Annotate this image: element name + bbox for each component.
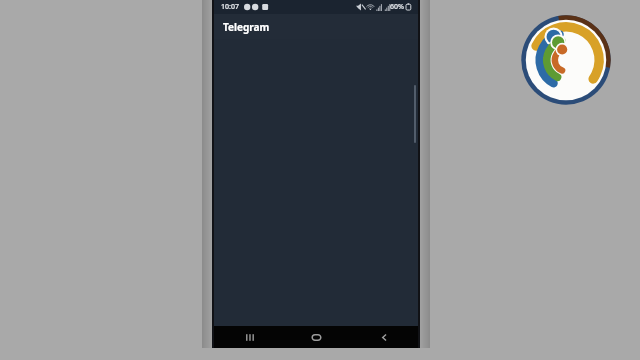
button[interactable]: Telegram (214, 14, 418, 39)
staticText: 10:07 (221, 2, 239, 12)
staticText: 60% (390, 2, 404, 12)
button[interactable]: Home (282, 326, 350, 348)
staticText: Telegram (223, 20, 270, 34)
button[interactable]: Channel logo (514, 8, 618, 112)
button[interactable]: Recent apps (214, 326, 282, 348)
button[interactable]: Back (350, 326, 418, 348)
